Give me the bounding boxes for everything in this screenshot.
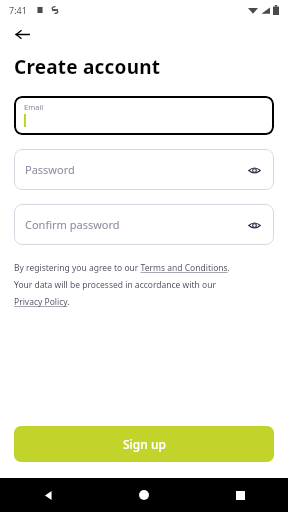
button[interactable]: Home bbox=[96, 478, 192, 512]
button[interactable]: Confirm password bbox=[14, 204, 274, 245]
button[interactable]: Email bbox=[14, 96, 274, 135]
button[interactable]: Show password bbox=[242, 158, 266, 182]
staticText: Your data will be processed in accordanc… bbox=[14, 279, 216, 291]
staticText: Password bbox=[25, 162, 75, 177]
button[interactable]: Recent apps bbox=[192, 478, 288, 512]
button[interactable]: Show password bbox=[242, 213, 266, 237]
staticText: 7:41 bbox=[9, 4, 27, 16]
staticText: Create account bbox=[14, 54, 161, 80]
staticText: Confirm password bbox=[25, 217, 120, 232]
button[interactable]: Password bbox=[14, 149, 274, 190]
button[interactable]: By registering you agree to our Terms an… bbox=[14, 262, 230, 274]
button[interactable]: Privacy Policy. bbox=[14, 296, 70, 308]
staticText: Sign up bbox=[123, 436, 166, 452]
button[interactable]: Back bbox=[0, 478, 96, 512]
staticText: Email bbox=[24, 102, 44, 112]
button[interactable]: Sign up bbox=[14, 426, 274, 462]
button[interactable]: Back bbox=[8, 20, 36, 48]
